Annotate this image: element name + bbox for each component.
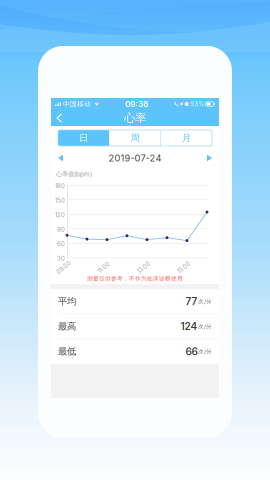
button[interactable]: 最高: [51, 314, 219, 339]
staticText: 最低: [58, 346, 76, 357]
button[interactable]: Previous day: [54, 151, 69, 165]
staticText: 月: [182, 132, 191, 144]
button[interactable]: Next day: [201, 151, 216, 165]
button[interactable]: 日: [58, 130, 109, 146]
staticText: 次/分: [198, 298, 212, 305]
staticText: 日: [79, 132, 88, 144]
staticText: 次/分: [198, 323, 212, 330]
button[interactable]: 平均: [51, 289, 219, 314]
staticText: 66: [185, 345, 197, 358]
staticText: 90: [57, 226, 65, 233]
button[interactable]: 月: [161, 130, 212, 146]
button[interactable]: 周: [109, 130, 160, 146]
staticText: 53%: [190, 100, 204, 108]
staticText: 09:38: [125, 99, 148, 109]
staticText: 中国移动: [63, 100, 91, 108]
staticText: 11:00: [97, 264, 111, 271]
staticText: 心率: [124, 111, 146, 125]
staticText: 77: [185, 295, 197, 307]
staticText: 30: [57, 255, 65, 262]
staticText: 最高: [58, 320, 76, 332]
staticText: 2019-07-24: [108, 152, 161, 164]
staticText: 平均: [58, 295, 76, 307]
staticText: 15:00: [176, 264, 191, 271]
button[interactable]: 最低: [51, 339, 219, 364]
staticText: 120: [55, 211, 65, 219]
staticText: 周: [130, 132, 139, 144]
staticText: 09:00: [55, 264, 72, 271]
staticText: 180: [55, 182, 65, 190]
staticText: 次/分: [198, 348, 212, 355]
staticText: 心率值(bpm): [56, 170, 92, 178]
button[interactable]: Back: [51, 110, 69, 126]
staticText: 60: [57, 240, 65, 248]
staticText: 13:00: [136, 264, 151, 271]
staticText: 测量仅供参考，不作为临床诊断使用: [87, 275, 183, 282]
staticText: 150: [55, 197, 65, 204]
staticText: 124: [180, 320, 197, 332]
